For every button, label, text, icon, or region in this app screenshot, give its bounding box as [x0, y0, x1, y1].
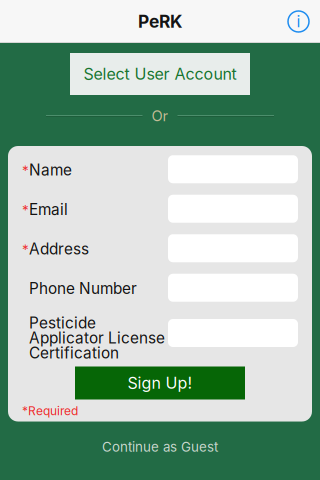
staticText: Certification — [29, 344, 119, 362]
button[interactable]: Sign Up! — [75, 366, 245, 399]
staticText: Applicator License — [29, 329, 165, 347]
staticText: Address — [29, 240, 89, 258]
staticText: Select User Account — [83, 64, 236, 84]
button[interactable]: Select User Account — [70, 53, 250, 95]
staticText: Pesticide — [29, 314, 96, 332]
staticText: * — [22, 202, 29, 218]
staticText: Email — [29, 200, 68, 219]
staticText: Phone Number — [29, 279, 137, 298]
staticText: Or — [151, 107, 168, 125]
button[interactable]: Continue as Guest — [78, 431, 242, 463]
staticText: i — [296, 12, 300, 31]
staticText: *Required — [22, 403, 78, 418]
staticText: Sign Up! — [127, 373, 192, 393]
staticText: * — [22, 162, 29, 179]
button[interactable]: Info — [277, 0, 320, 43]
staticText: PeRK — [138, 11, 182, 32]
staticText: Name — [29, 161, 72, 179]
staticText: Continue as Guest — [102, 439, 218, 455]
staticText: * — [22, 241, 29, 258]
